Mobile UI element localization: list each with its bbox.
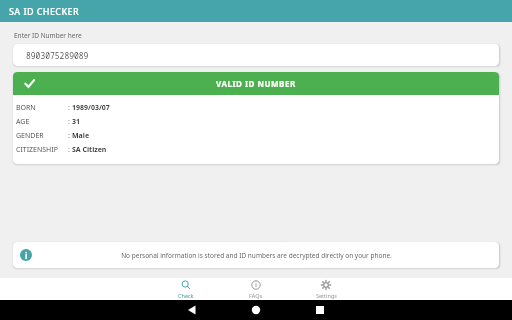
staticText: FAQs [249, 292, 263, 299]
staticText: : [68, 145, 72, 155]
staticText: No personal information is stored and ID… [121, 251, 392, 260]
button[interactable]: FAQs [221, 278, 291, 300]
staticText: Check [178, 292, 194, 299]
staticText: : [68, 131, 72, 141]
staticText: i [25, 250, 28, 261]
staticText: CITIZENSHIP [16, 145, 68, 155]
staticText: SA ID CHECKER [9, 5, 80, 17]
staticText: GENDER [16, 131, 68, 141]
staticText: SA Citizen [72, 145, 107, 155]
staticText: 1989/03/07 [72, 103, 110, 113]
staticText: Male [72, 131, 90, 141]
staticText: 31 [72, 117, 81, 127]
staticText: 8903075289089 [26, 50, 89, 61]
staticText: Enter ID Number here [14, 31, 82, 40]
button[interactable]: i [13, 242, 499, 268]
button[interactable]: 8903075289089 [13, 44, 499, 66]
staticText: Settings [316, 292, 337, 299]
staticText: : [68, 103, 72, 113]
staticText: AGE [16, 117, 68, 127]
staticText: VALID ID NUMBER [216, 78, 296, 89]
button[interactable]: Settings [291, 278, 361, 300]
staticText: : [68, 117, 72, 127]
button[interactable]: Check [151, 278, 221, 300]
staticText: BORN [16, 103, 68, 113]
